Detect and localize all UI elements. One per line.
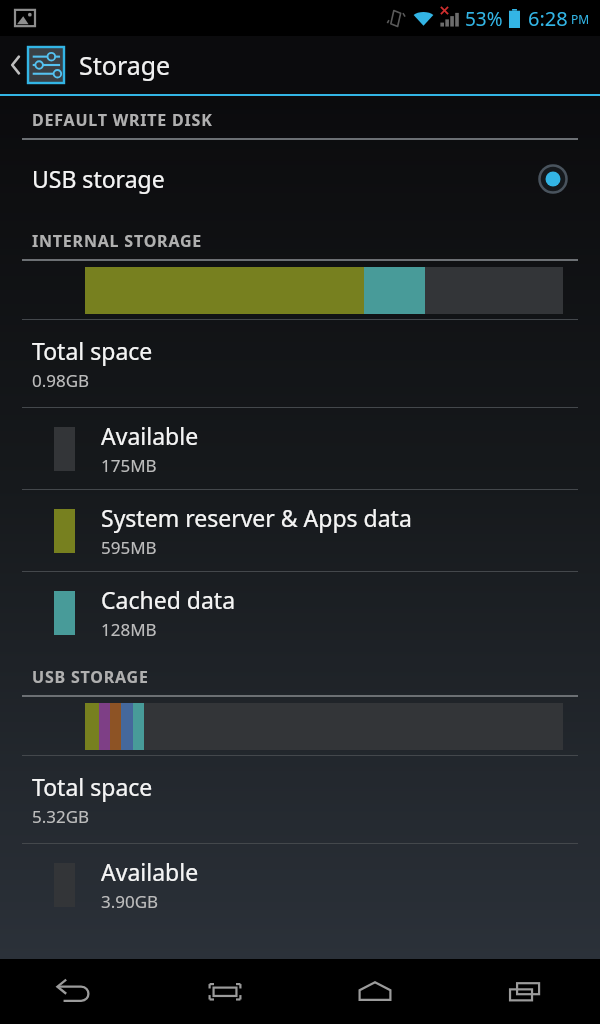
button[interactable]: Total space [0,320,600,407]
staticText: PM [571,11,590,27]
staticText: INTERNAL STORAGE [32,230,203,252]
button[interactable]: Screenshot [150,959,300,1024]
button[interactable]: USB storage [0,140,600,217]
staticText: 128MB [101,618,157,641]
button[interactable]: Available [0,408,600,489]
other: Back [8,52,22,78]
staticText: DEFAULT WRITE DISK [32,109,213,131]
button[interactable]: Recent apps [450,959,600,1024]
staticText: Available [101,856,199,887]
staticText: 0.98GB [32,369,90,392]
staticText: Total space [32,771,153,802]
button[interactable]: Available [0,844,600,925]
staticText: Available [101,420,199,451]
staticText: Storage [79,48,171,82]
button[interactable]: Total space [0,756,600,843]
staticText: 3.90GB [101,890,159,913]
staticText: System reserver & Apps data [101,502,412,533]
button[interactable]: Home [300,959,450,1024]
button[interactable]: Back [0,36,600,94]
staticText: 175MB [101,454,157,477]
button[interactable]: System reserver & Apps data [0,490,600,571]
staticText: 595MB [101,536,157,559]
staticText: 5.32GB [32,805,90,828]
staticText: USB STORAGE [32,666,149,688]
button[interactable]: Back [0,959,150,1024]
staticText: USB storage [32,163,165,194]
button[interactable]: Cached data [0,572,600,653]
staticText: Total space [32,335,153,366]
staticText: 53% [465,6,503,32]
staticText: Cached data [101,584,236,615]
staticText: 6:28 [528,5,568,32]
